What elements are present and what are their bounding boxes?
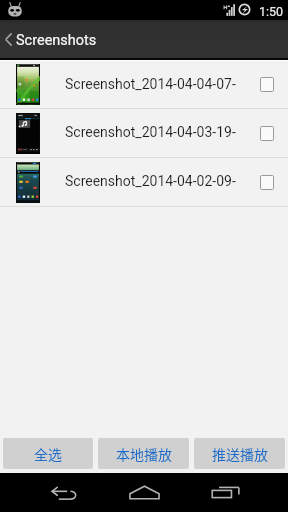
button[interactable]: Screenshot_2014-04-02-09-: [0, 158, 288, 206]
button[interactable]: Select screenshot: [260, 175, 274, 190]
staticText: Screenshot_2014-04-04-07-: [65, 76, 236, 92]
staticText: 本地播放: [116, 444, 172, 464]
staticText: Screenshot_2014-04-02-09-: [65, 173, 236, 189]
staticText: 推送播放: [212, 444, 268, 464]
button[interactable]: 推送播放: [194, 438, 285, 469]
staticText: Screenshots: [16, 32, 97, 49]
button[interactable]: Home: [118, 473, 170, 512]
button[interactable]: Recent apps: [200, 473, 252, 512]
staticText: 1:50: [259, 4, 284, 19]
button[interactable]: Screenshot_2014-04-04-07-: [0, 61, 288, 108]
button[interactable]: Select screenshot: [260, 77, 274, 92]
staticText: 全选: [34, 444, 62, 464]
button[interactable]: Select screenshot: [260, 126, 274, 141]
button[interactable]: Screenshots: [0, 20, 288, 58]
button[interactable]: Back: [38, 473, 90, 512]
button[interactable]: 全选: [3, 438, 93, 469]
button[interactable]: 本地播放: [98, 438, 189, 469]
staticText: Screenshot_2014-04-03-19-: [65, 124, 236, 140]
button[interactable]: Screenshot_2014-04-03-19-: [0, 109, 288, 157]
